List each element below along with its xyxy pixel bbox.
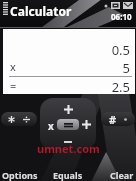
button[interactable]: Star and divide key [1, 112, 37, 126]
button[interactable]: Multiply [45, 119, 56, 130]
staticText: = [10, 78, 17, 93]
button[interactable]: Hash key [101, 112, 135, 126]
staticText: 5 [122, 59, 130, 74]
button[interactable]: Equals [53, 169, 83, 181]
staticText: x [10, 59, 16, 74]
staticText: umnet.com [37, 141, 100, 156]
button[interactable]: Add [40, 98, 96, 150]
button[interactable]: Options [2, 169, 38, 181]
button[interactable]: x [3, 59, 135, 74]
staticText: x [48, 119, 54, 130]
button[interactable]: 0.5 [3, 41, 135, 56]
button[interactable]: = [3, 78, 135, 93]
button[interactable]: Equals [57, 119, 79, 130]
button[interactable]: Add [64, 105, 73, 114]
staticText: 0.5 [111, 41, 130, 56]
staticText: Calculator [10, 3, 72, 19]
staticText: 2.5 [111, 78, 130, 93]
button[interactable]: Subtract [64, 140, 72, 144]
button[interactable]: Plus [82, 120, 91, 129]
staticText: 06:10 [111, 11, 132, 22]
button[interactable]: Clear [110, 169, 134, 181]
staticText: # [109, 112, 117, 126]
